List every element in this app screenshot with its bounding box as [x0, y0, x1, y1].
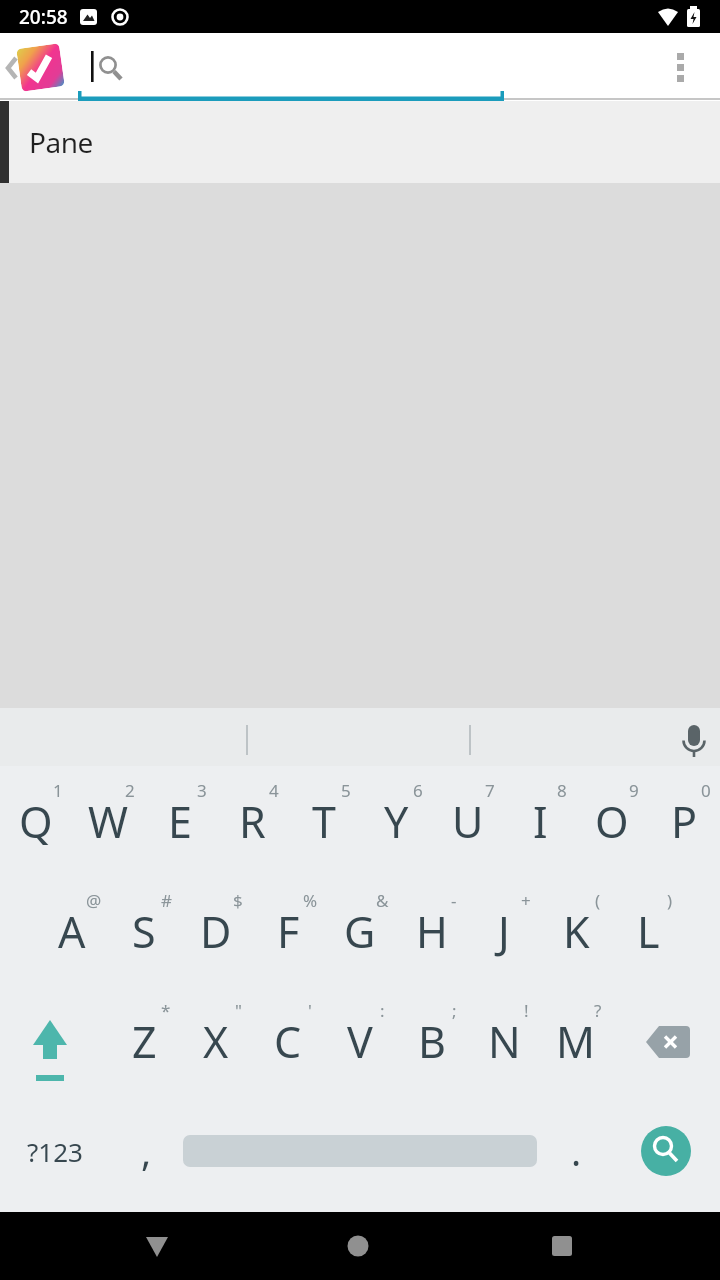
- staticText: *: [161, 999, 171, 1022]
- staticText: 5: [341, 779, 351, 802]
- staticText: #: [161, 889, 172, 912]
- staticText: W: [88, 792, 128, 851]
- staticText: H: [416, 902, 448, 961]
- button[interactable]: [16, 43, 65, 92]
- staticText: 2: [125, 779, 135, 802]
- button[interactable]: [512, 1212, 612, 1280]
- button[interactable]: L: [612, 876, 684, 986]
- staticText: 6: [413, 779, 423, 802]
- button[interactable]: Y: [360, 766, 432, 876]
- staticText: O: [595, 792, 629, 851]
- button[interactable]: Pane: [0, 101, 720, 183]
- button[interactable]: P: [648, 766, 720, 876]
- button[interactable]: O: [576, 766, 648, 876]
- button[interactable]: ?123: [0, 1096, 110, 1206]
- button[interactable]: M: [540, 986, 612, 1096]
- button[interactable]: [0, 986, 108, 1096]
- staticText: C: [274, 1012, 302, 1071]
- button[interactable]: G: [324, 876, 396, 986]
- button[interactable]: C: [252, 986, 324, 1096]
- button[interactable]: ,: [110, 1096, 182, 1206]
- button[interactable]: [612, 1096, 720, 1206]
- staticText: M: [556, 1012, 596, 1071]
- staticText: $: [233, 889, 243, 912]
- button[interactable]: K: [540, 876, 612, 986]
- button[interactable]: J: [468, 876, 540, 986]
- staticText: K: [563, 902, 590, 961]
- staticText: N: [488, 1012, 521, 1071]
- button[interactable]: [612, 986, 720, 1096]
- staticText: X: [203, 1012, 229, 1071]
- staticText: P: [671, 792, 698, 851]
- staticText: (: [595, 889, 601, 912]
- staticText: ): [667, 889, 673, 912]
- button[interactable]: D: [180, 876, 252, 986]
- staticText: 7: [485, 779, 495, 802]
- staticText: ": [235, 999, 242, 1022]
- staticText: .: [571, 1125, 582, 1177]
- button[interactable]: Q: [0, 766, 72, 876]
- staticText: Y: [384, 792, 409, 851]
- staticText: I: [533, 792, 548, 851]
- staticText: 8: [557, 779, 567, 802]
- staticText: 1: [53, 779, 63, 802]
- staticText: ': [308, 999, 312, 1022]
- staticText: @: [86, 889, 102, 912]
- staticText: :: [380, 999, 385, 1022]
- staticText: 4: [269, 779, 279, 802]
- staticText: B: [418, 1012, 446, 1071]
- staticText: S: [132, 902, 156, 961]
- staticText: L: [637, 902, 660, 961]
- staticText: R: [239, 792, 266, 851]
- button[interactable]: F: [252, 876, 324, 986]
- staticText: ?123: [27, 1134, 83, 1169]
- button[interactable]: T: [288, 766, 360, 876]
- button[interactable]: W: [72, 766, 144, 876]
- button[interactable]: A: [36, 876, 108, 986]
- staticText: G: [344, 902, 376, 961]
- staticText: E: [168, 792, 192, 851]
- staticText: A: [58, 902, 86, 961]
- staticText: T: [312, 792, 336, 851]
- button[interactable]: H: [396, 876, 468, 986]
- staticText: F: [277, 902, 300, 961]
- button[interactable]: V: [324, 986, 396, 1096]
- staticText: ?: [594, 999, 602, 1022]
- button[interactable]: Z: [108, 986, 180, 1096]
- button[interactable]: [657, 43, 705, 91]
- staticText: 9: [629, 779, 639, 802]
- button[interactable]: X: [180, 986, 252, 1096]
- button[interactable]: [78, 33, 504, 97]
- button[interactable]: [471, 708, 720, 766]
- staticText: %: [303, 889, 318, 912]
- staticText: Q: [19, 792, 53, 851]
- staticText: 0: [701, 779, 711, 802]
- button[interactable]: U: [432, 766, 504, 876]
- button[interactable]: .: [540, 1096, 612, 1206]
- button[interactable]: R: [216, 766, 288, 876]
- staticText: +: [521, 889, 531, 912]
- button[interactable]: E: [144, 766, 216, 876]
- staticText: 20:58: [19, 4, 68, 30]
- button[interactable]: S: [108, 876, 180, 986]
- staticText: Z: [132, 1012, 157, 1071]
- staticText: U: [452, 792, 484, 851]
- staticText: V: [347, 1012, 373, 1071]
- staticText: D: [200, 902, 232, 961]
- button[interactable]: [0, 43, 24, 91]
- button[interactable]: B: [396, 986, 468, 1096]
- staticText: J: [498, 902, 510, 961]
- staticText: &: [376, 889, 389, 912]
- button[interactable]: [107, 1212, 207, 1280]
- button[interactable]: I: [504, 766, 576, 876]
- staticText: !: [524, 999, 529, 1022]
- staticText: Pane: [29, 123, 93, 161]
- staticText: 3: [197, 779, 207, 802]
- staticText: ,: [141, 1125, 152, 1177]
- staticText: ;: [452, 999, 457, 1022]
- button[interactable]: [183, 1096, 537, 1206]
- button[interactable]: [308, 1212, 408, 1280]
- button[interactable]: N: [468, 986, 540, 1096]
